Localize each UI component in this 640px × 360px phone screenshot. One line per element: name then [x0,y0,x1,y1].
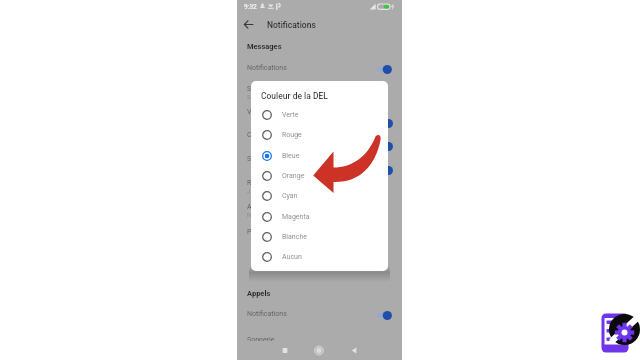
staticText: R [247,179,252,187]
staticText: N [247,211,252,218]
staticText: J [247,187,251,194]
staticText: Rouge [282,131,302,139]
staticText: Notifications [267,20,316,30]
staticText: S [247,93,251,100]
staticText: Magenta [282,213,310,221]
staticText: Sonnerie [247,336,275,344]
button[interactable]: Back [240,16,257,33]
staticText: Blanche [282,233,307,241]
button[interactable]: Blanche [251,227,388,247]
staticText: A [247,203,252,211]
staticText: P [247,228,252,236]
button[interactable]: Rouge [251,125,388,145]
staticText: Couleur de la DEL [261,91,328,101]
button[interactable]: Verte [251,105,388,125]
button[interactable]: Aucun [251,247,388,267]
staticText: Appels [247,289,271,298]
staticText: V [247,108,252,116]
button[interactable]: Cyan [251,186,388,206]
button[interactable]: Notifications [237,306,402,322]
staticText: Bleue [282,152,300,160]
button[interactable]: Site watermark [601,312,639,356]
staticText: S [247,155,252,163]
staticText: Messages [247,42,282,51]
staticText: Notifications [247,310,287,318]
staticText: Aucun [282,253,302,261]
staticText: Verte [282,111,299,119]
button[interactable]: Notifications toggle [376,310,394,321]
staticText: S [247,85,252,93]
button[interactable]: Orange [251,166,388,186]
staticText: C [247,131,252,139]
staticText: Notifications [247,64,287,72]
staticText: Orange [282,172,305,180]
button[interactable]: Bleue [251,146,388,166]
staticText: Cyan [282,192,298,200]
button[interactable]: Notifications toggle [376,64,394,75]
staticText: 9:32 [244,3,257,11]
button[interactable]: Magenta [251,207,388,227]
button[interactable]: Notifications [237,60,402,76]
